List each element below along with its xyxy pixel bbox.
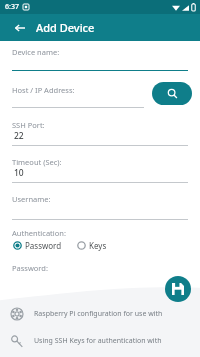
button[interactable]: Raspberry Pi configuration for use with … xyxy=(0,302,200,326)
staticText: Raspberry Pi configuration for use with … xyxy=(34,309,200,319)
staticText: Device name: xyxy=(12,47,60,57)
button[interactable]: Back xyxy=(11,19,29,37)
staticText: Host / IP Address: xyxy=(12,85,75,95)
button[interactable]: Password xyxy=(11,238,64,253)
staticText: 6:37 xyxy=(5,2,19,12)
button[interactable]: Search xyxy=(152,82,192,105)
staticText: Keys xyxy=(89,240,107,251)
staticText: Password xyxy=(25,240,62,251)
staticText: SSH Port: xyxy=(12,120,45,130)
staticText: 22 xyxy=(14,130,24,142)
staticText: Authentication: xyxy=(12,228,66,238)
button[interactable]: Using SSH Keys for authentication with R… xyxy=(0,329,200,353)
staticText: Add Device xyxy=(36,20,95,35)
button[interactable]: Save xyxy=(165,276,191,302)
staticText: Using SSH Keys for authentication with R… xyxy=(34,336,200,346)
staticText: 10 xyxy=(14,167,24,179)
staticText: Password: xyxy=(12,263,48,273)
staticText: Username: xyxy=(12,194,51,204)
staticText: Timeout (Sec): xyxy=(12,157,62,167)
button[interactable]: Keys xyxy=(75,238,109,253)
